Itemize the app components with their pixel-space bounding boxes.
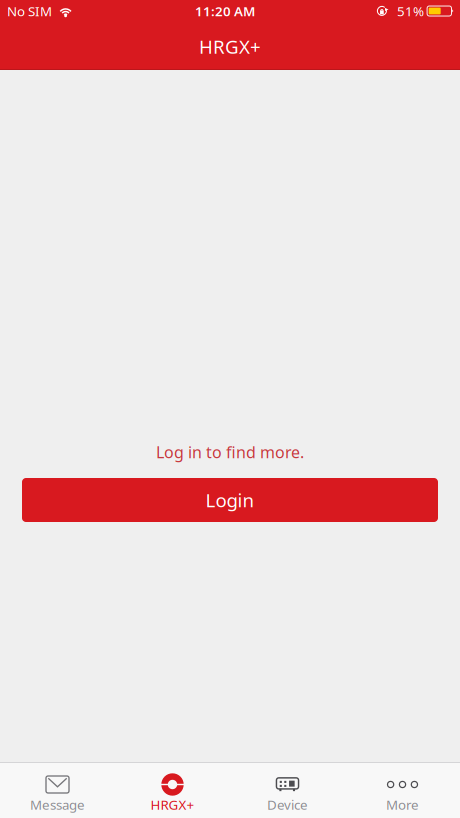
staticText: HRGX+ [199,34,261,59]
button[interactable]: Device [230,763,345,818]
staticText: Login [205,488,254,512]
button[interactable]: Message [0,763,115,818]
staticText: More [386,796,419,813]
staticText: Log in to find more. [156,441,304,463]
staticText: 51% [397,2,424,20]
button[interactable]: HRGX+ [115,763,230,818]
staticText: Message [30,796,85,813]
button[interactable]: Login [22,478,438,522]
staticText: No SIM [7,2,52,20]
staticText: Device [267,796,308,813]
staticText: HRGX+ [150,796,194,813]
staticText: 11:20 AM [195,2,255,20]
button[interactable]: More [345,763,460,818]
